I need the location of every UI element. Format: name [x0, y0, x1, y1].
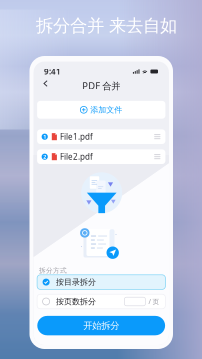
- staticText: 拆分合并 来去自如: [36, 15, 177, 36]
- button[interactable]: 按页数拆分: [37, 294, 165, 309]
- button[interactable]: 开始拆分: [37, 316, 165, 335]
- staticText: 2: [43, 153, 46, 160]
- staticText: File2.pdf: [60, 151, 93, 162]
- staticText: 9:41: [44, 66, 61, 77]
- button[interactable]: 2: [37, 149, 165, 164]
- staticText: PDF 合并: [82, 79, 120, 92]
- staticText: / 页: [148, 297, 159, 306]
- button[interactable]: 1: [37, 129, 165, 144]
- staticText: File1.pdf: [60, 131, 93, 142]
- staticText: 添加文件: [90, 105, 122, 115]
- button[interactable]: Back: [39, 77, 52, 89]
- staticText: 拆分方式: [39, 266, 67, 275]
- button[interactable]: 按目录拆分: [37, 275, 165, 289]
- staticText: 按目录拆分: [56, 277, 96, 287]
- staticText: 1: [43, 133, 46, 140]
- staticText: 按页数拆分: [56, 297, 96, 306]
- staticText: 开始拆分: [83, 320, 119, 331]
- button[interactable]: 添加文件: [37, 101, 165, 119]
